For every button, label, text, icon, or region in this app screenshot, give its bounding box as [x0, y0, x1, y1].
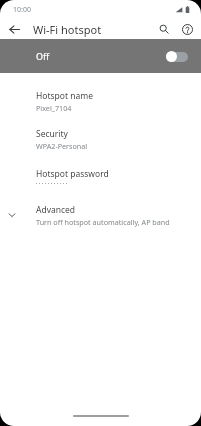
staticText: Security	[36, 128, 68, 140]
button[interactable]: Hotspot password	[0, 158, 201, 196]
staticText: Turn off hotspot automatically, AP band	[36, 217, 170, 227]
staticText: Hotspot password	[36, 168, 109, 180]
staticText: Hotspot name	[36, 90, 93, 102]
button[interactable]: Back	[6, 21, 23, 38]
staticText: 10:00	[13, 5, 31, 15]
staticText: Advanced	[36, 204, 76, 216]
button[interactable]: Search	[155, 20, 173, 38]
staticText: Off	[36, 50, 50, 62]
button[interactable]: Security	[0, 120, 201, 158]
staticText: WPA2-Personal	[36, 141, 88, 151]
button[interactable]: Off	[0, 39, 201, 73]
button[interactable]: Hotspot name	[0, 82, 201, 120]
staticText: Wi-Fi hotspot	[33, 22, 102, 37]
button[interactable]: Help	[178, 20, 196, 38]
staticText: Pixel_7104	[36, 103, 72, 113]
button[interactable]: Advanced	[0, 196, 201, 234]
